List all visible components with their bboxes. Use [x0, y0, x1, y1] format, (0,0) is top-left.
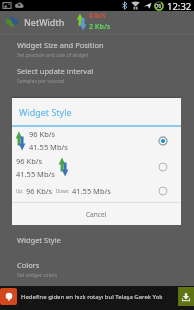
staticText: 12:32 [167, 0, 192, 11]
staticText: Hedefine giden en hızlı rotayı bul Telaş… [21, 293, 163, 301]
staticText: Down: [56, 188, 70, 194]
staticText: 41.55 Mb/s [72, 186, 111, 196]
staticText: Widget Style [19, 106, 72, 118]
staticText: 96 Kb/s [26, 186, 53, 196]
staticText: Cancel [86, 210, 107, 219]
button[interactable]: Cancel [12, 203, 181, 225]
staticText: 96 Kb/s [29, 129, 56, 139]
staticText: Colors [17, 260, 40, 270]
staticText: 96 Kb/s [16, 156, 43, 166]
staticText: Samples per second [17, 78, 65, 85]
staticText: Set widget colors [17, 272, 58, 279]
staticText: Up: [16, 188, 24, 194]
staticText: 76 [156, 3, 162, 9]
button[interactable]: Select update interval [0, 66, 194, 85]
staticText: NetWidth [24, 16, 65, 28]
button[interactable]: Up: [12, 180, 181, 202]
staticText: Select update interval [17, 66, 94, 76]
button[interactable]: Colors [0, 260, 194, 279]
button[interactable]: Hedefine giden en hızlı rotayı bul Telaş… [0, 286, 194, 310]
button[interactable]: 96 Kb/s [12, 154, 181, 180]
button[interactable]: Install [178, 287, 194, 306]
staticText: Widget Style [17, 235, 61, 245]
staticText: 41.55 Mb/s [16, 169, 55, 179]
staticText: 0 b/s [89, 11, 106, 21]
staticText: Set position and size of widget [17, 52, 89, 59]
button[interactable]: 96 Kb/s [12, 127, 181, 154]
button[interactable]: Widget Style [0, 235, 194, 247]
button[interactable]: Widget Size and Position [0, 40, 194, 59]
staticText: 2 Kb/s [89, 22, 111, 32]
staticText: Widget Size and Position [17, 40, 104, 50]
staticText: 41.55 Mb/s [29, 142, 68, 152]
